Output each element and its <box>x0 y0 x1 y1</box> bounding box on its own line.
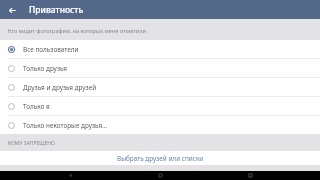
staticText: Приватность <box>29 4 84 16</box>
staticText: Все пользователи <box>23 45 79 54</box>
button[interactable]: Home <box>140 171 180 180</box>
staticText: Только некоторые друзья... <box>23 121 108 130</box>
button[interactable]: Выбрать друзей или списки <box>0 151 320 165</box>
staticText: Кто видит фотографии, на которых меня от… <box>8 27 147 35</box>
button[interactable]: Друзья и друзья друзей <box>0 78 320 96</box>
button[interactable]: Recents <box>230 171 270 180</box>
button[interactable]: Только друзья <box>0 59 320 77</box>
button[interactable]: Только некоторые друзья... <box>0 116 320 134</box>
staticText: КОМУ ЗАПРЕЩЕНО <box>8 140 55 147</box>
staticText: Друзья и друзья друзей <box>23 83 97 92</box>
button[interactable]: Back <box>4 2 20 18</box>
staticText: Выбрать друзей или списки <box>117 154 204 163</box>
staticText: Только друзья <box>23 64 68 73</box>
staticText: Только я <box>23 102 50 111</box>
button[interactable]: Back <box>50 171 90 180</box>
button[interactable]: Все пользователи <box>0 40 320 58</box>
button[interactable]: Только я <box>0 97 320 115</box>
